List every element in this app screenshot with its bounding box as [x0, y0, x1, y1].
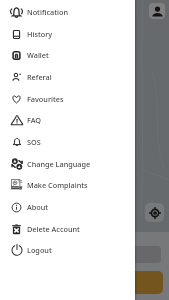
button[interactable]: Delete Account [0, 218, 135, 240]
staticText: Change Language [27, 159, 91, 169]
staticText: History [27, 29, 53, 39]
staticText: Favourites [27, 94, 64, 104]
staticText: SOS [27, 137, 41, 147]
staticText: Notification [27, 7, 69, 17]
button[interactable]: Favourites [0, 88, 135, 110]
button[interactable]: My location [145, 203, 164, 222]
staticText: Referal [27, 72, 52, 82]
button[interactable]: Notification [0, 1, 135, 23]
staticText: About [27, 202, 49, 212]
button[interactable]: Change Language [0, 153, 135, 175]
button[interactable]: Logout [0, 239, 135, 261]
button[interactable]: Wallet [0, 44, 135, 66]
staticText: Wallet [27, 50, 49, 60]
staticText: Logout [27, 245, 52, 255]
staticText: Make Complaints [27, 180, 88, 190]
staticText: FAQ [27, 115, 42, 125]
button[interactable]: About [0, 196, 135, 218]
button[interactable]: FAQ [0, 109, 135, 131]
button[interactable]: SOS [0, 131, 135, 153]
button[interactable] [118, 246, 161, 263]
button[interactable]: History [0, 23, 135, 45]
button[interactable]: Make Complaints [0, 174, 135, 196]
staticText: Delete Account [27, 224, 80, 234]
button[interactable] [118, 271, 163, 294]
button[interactable]: Referal [0, 66, 135, 88]
button[interactable]: Profile [149, 3, 165, 19]
